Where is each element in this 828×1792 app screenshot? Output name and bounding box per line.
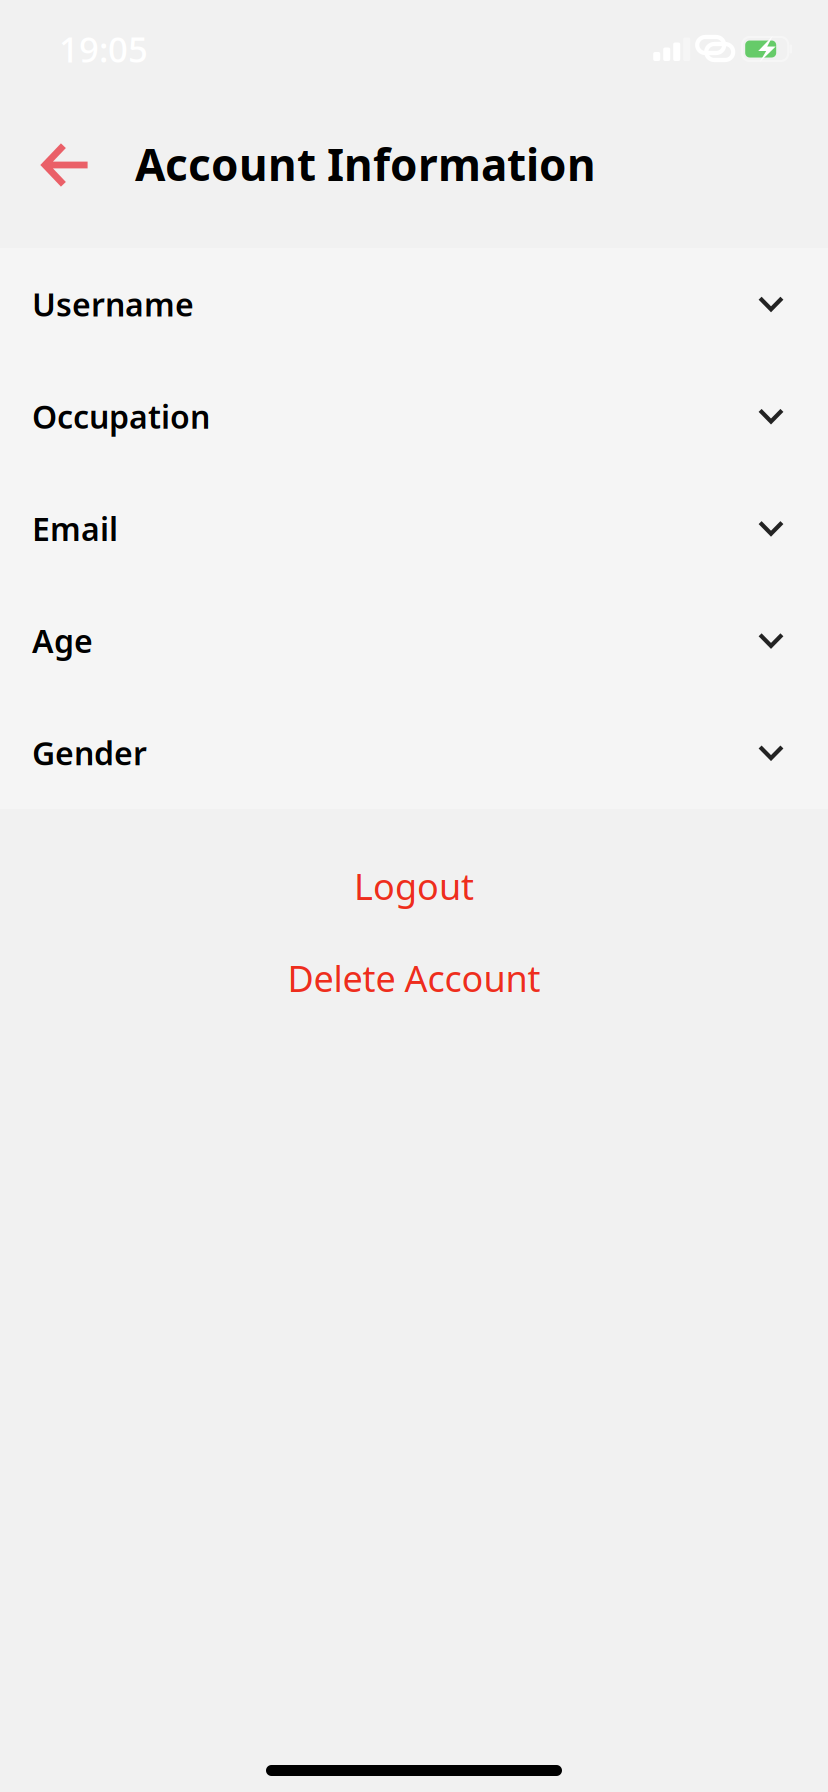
staticText: Occupation bbox=[32, 395, 210, 438]
staticText: Age bbox=[32, 619, 93, 662]
staticText: 19:05 bbox=[59, 26, 148, 72]
staticText: Delete Account bbox=[287, 954, 540, 1002]
button[interactable]: Email bbox=[0, 472, 828, 585]
staticText: Logout bbox=[354, 862, 474, 910]
staticText: Email bbox=[32, 507, 118, 550]
button[interactable]: Delete Account bbox=[0, 934, 828, 1022]
button[interactable]: Occupation bbox=[0, 360, 828, 472]
button[interactable]: Username bbox=[0, 248, 828, 360]
button[interactable]: Gender bbox=[0, 697, 828, 809]
button[interactable]: Age bbox=[0, 585, 828, 697]
staticText: Username bbox=[32, 283, 194, 325]
staticText: Gender bbox=[32, 732, 147, 774]
button[interactable]: Back bbox=[0, 118, 135, 210]
staticText: Account Information bbox=[135, 135, 596, 193]
button[interactable]: Logout bbox=[0, 842, 828, 930]
